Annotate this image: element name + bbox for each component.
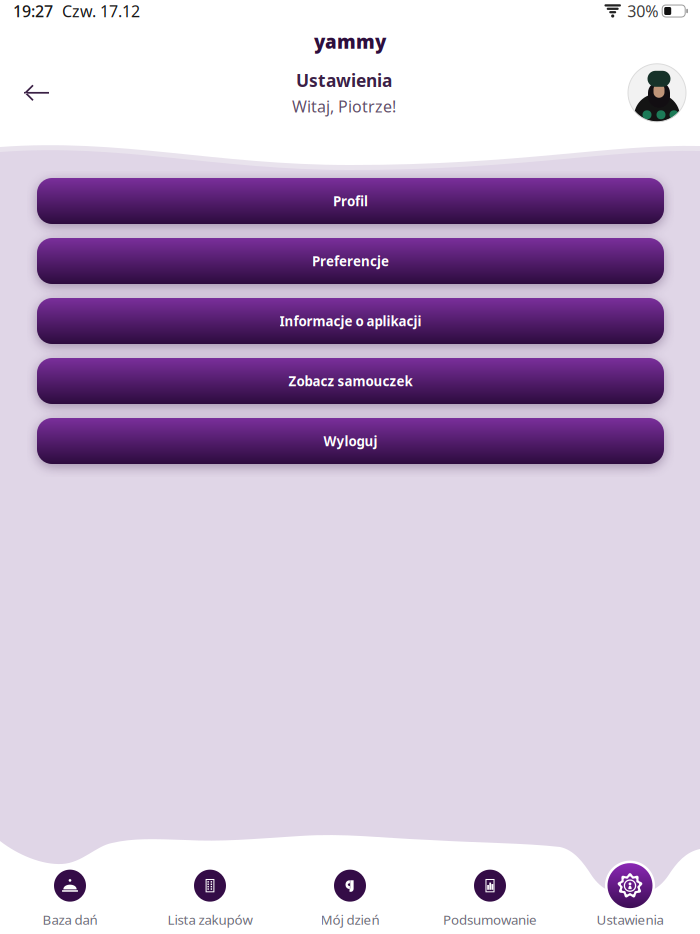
- staticText: Profil: [333, 192, 368, 210]
- staticText: Podsumowanie: [443, 911, 537, 928]
- staticText: Informacje o aplikacji: [279, 312, 421, 330]
- button[interactable]: Wyloguj: [37, 418, 664, 464]
- button[interactable]: Profile photo: [628, 64, 686, 122]
- staticText: Ustawienia: [596, 911, 663, 928]
- staticText: Czw. 17.12: [62, 0, 140, 22]
- button[interactable]: Profil: [37, 178, 664, 224]
- staticText: Wyloguj: [323, 432, 377, 450]
- button[interactable]: Preferencje: [37, 238, 664, 284]
- staticText: Ustawienia: [296, 69, 392, 92]
- staticText: Lista zakupów: [167, 911, 252, 928]
- staticText: Zobacz samouczek: [288, 372, 412, 390]
- button[interactable]: Informacje o aplikacji: [37, 298, 664, 344]
- staticText: 19:27: [13, 0, 53, 22]
- button[interactable]: Ustawienia: [560, 843, 700, 934]
- staticText: Witaj, Piotrze!: [292, 96, 396, 117]
- button[interactable]: Baza dań: [0, 843, 140, 934]
- staticText: yammy: [314, 29, 386, 54]
- button[interactable]: Mój dzień: [280, 843, 420, 934]
- staticText: 30%: [627, 0, 658, 22]
- staticText: Baza dań: [42, 911, 97, 928]
- staticText: Preferencje: [312, 252, 389, 270]
- button[interactable]: Podsumowanie: [420, 843, 560, 934]
- staticText: Mój dzień: [320, 911, 379, 928]
- button[interactable]: Lista zakupów: [140, 843, 280, 934]
- button[interactable]: Back: [12, 69, 60, 117]
- button[interactable]: Zobacz samouczek: [37, 358, 664, 404]
